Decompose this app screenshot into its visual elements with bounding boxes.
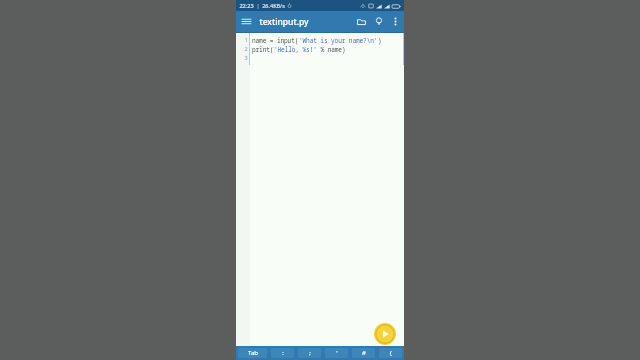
staticText: # xyxy=(362,349,366,357)
staticText: : xyxy=(282,349,284,357)
staticText: | xyxy=(256,2,260,9)
staticText: textinput.py xyxy=(259,16,309,28)
staticText: % name) xyxy=(317,45,346,53)
button[interactable]: # xyxy=(352,348,375,358)
button[interactable]: Run xyxy=(374,323,396,345)
button[interactable]: More options xyxy=(388,11,402,32)
staticText: 3 xyxy=(244,54,248,61)
staticText: 1 xyxy=(244,36,248,43)
button[interactable]: ' xyxy=(325,348,348,358)
staticText: 26.4KB/s xyxy=(262,2,285,9)
staticText: 22:23 xyxy=(239,2,254,9)
staticText: Tab xyxy=(248,349,258,357)
button[interactable]: Tab xyxy=(238,348,267,358)
button[interactable]: Navigation menu xyxy=(236,11,256,32)
staticText: ; xyxy=(309,349,311,357)
button[interactable]: Hints xyxy=(370,11,388,32)
staticText: name = input( xyxy=(252,36,299,44)
staticText: print( xyxy=(252,45,274,53)
staticText: ' xyxy=(336,349,338,357)
staticText: 2 xyxy=(244,45,248,52)
staticText: 'Hello, %s!' xyxy=(274,45,317,53)
button[interactable]: ( xyxy=(379,348,402,358)
button[interactable]: Open folder xyxy=(352,11,370,32)
staticText: ) xyxy=(378,36,382,44)
staticText: ( xyxy=(390,349,392,357)
button[interactable]: : xyxy=(271,348,294,358)
staticText: 'What is your name?\n' xyxy=(299,36,378,44)
button[interactable]: ; xyxy=(298,348,321,358)
